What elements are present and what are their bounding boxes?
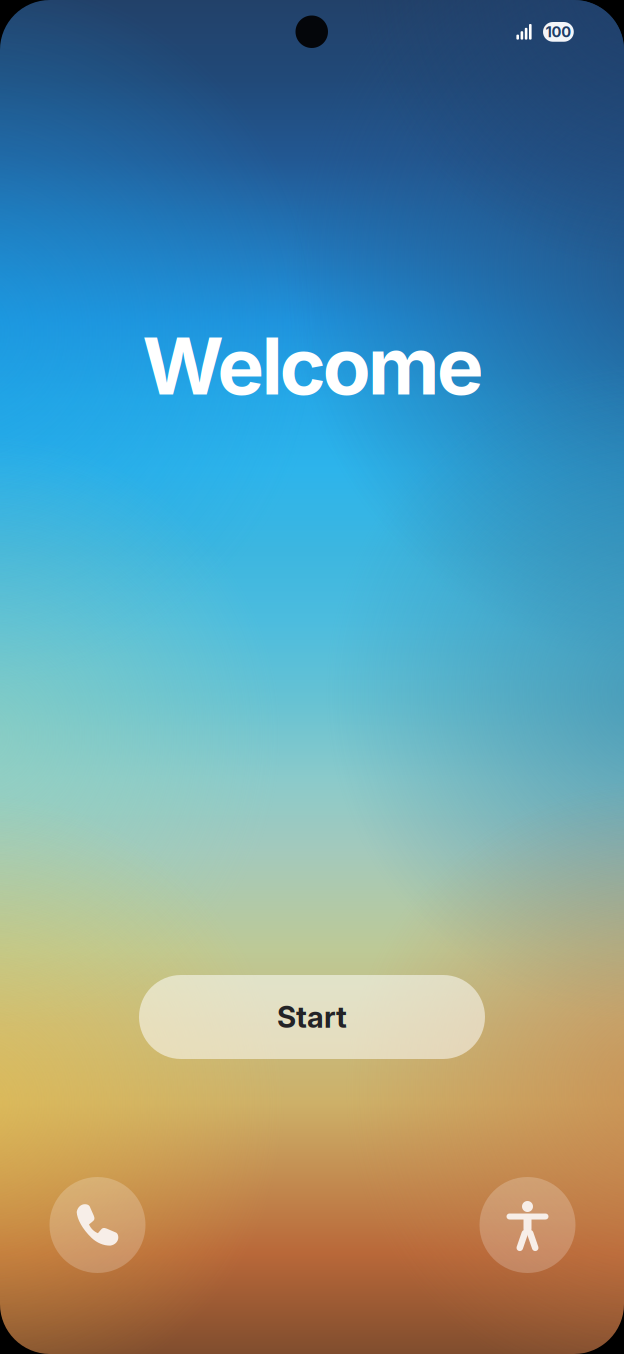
button[interactable]: Accessibility — [479, 1177, 575, 1273]
button[interactable]: Emergency call — [49, 1177, 145, 1273]
staticText: 100 — [545, 23, 571, 41]
staticText: Welcome — [142, 318, 484, 414]
button[interactable]: Start — [139, 975, 485, 1059]
staticText: Start — [277, 999, 347, 1035]
